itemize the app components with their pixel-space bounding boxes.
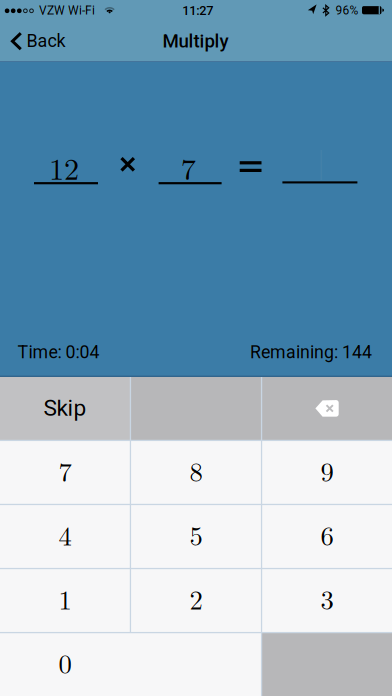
staticText: Time: 0:04 <box>17 342 99 363</box>
button[interactable]: 1 <box>0 569 130 632</box>
button[interactable]: Delete <box>262 377 392 440</box>
staticText: 4 <box>58 515 71 553</box>
button[interactable]: 6 <box>262 505 392 568</box>
button[interactable]: 2 <box>131 569 261 632</box>
button[interactable]: 4 <box>0 505 130 568</box>
staticText: VZW Wi-Fi <box>39 3 95 18</box>
staticText: 8 <box>189 451 202 489</box>
staticText: 3 <box>321 579 334 617</box>
staticText: 0 <box>58 643 71 681</box>
button[interactable]: Skip <box>0 377 130 440</box>
staticText: 7 <box>58 451 71 489</box>
staticText: Back <box>26 30 65 51</box>
staticText: 7 <box>181 146 196 189</box>
staticText: Multiply <box>163 30 229 52</box>
button[interactable]: 0 <box>0 633 261 696</box>
button[interactable]: 5 <box>131 505 261 568</box>
staticText: 6 <box>321 515 334 553</box>
staticText: 96% <box>335 3 358 18</box>
button[interactable]: 7 <box>0 441 130 504</box>
staticText: 12 <box>49 146 79 189</box>
staticText: Remaining: 144 <box>250 342 372 363</box>
button[interactable]: 3 <box>262 569 392 632</box>
button[interactable]: Back <box>0 21 76 61</box>
staticText: 5 <box>189 515 202 553</box>
staticText: 2 <box>189 579 202 617</box>
button[interactable]: 8 <box>131 441 261 504</box>
staticText: 11:27 <box>182 3 213 18</box>
staticText: 9 <box>321 451 334 489</box>
button[interactable]: 9 <box>262 441 392 504</box>
staticText: 1 <box>58 579 71 617</box>
staticText: Skip <box>43 395 86 421</box>
